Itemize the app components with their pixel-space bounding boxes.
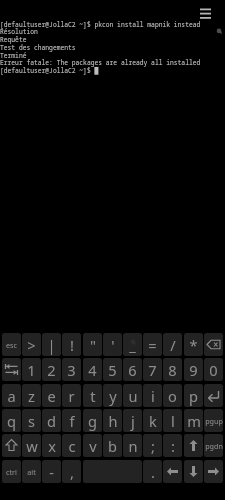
button[interactable]: ' — [103, 333, 122, 356]
staticText: * — [189, 335, 198, 355]
staticText: pgdn — [205, 441, 223, 451]
button[interactable]: | — [42, 333, 61, 356]
staticText: h — [108, 411, 118, 431]
staticText: ' — [111, 335, 115, 355]
button[interactable]: v — [83, 434, 102, 457]
button[interactable]: pgdn — [204, 434, 223, 457]
button[interactable]: 3 — [62, 358, 81, 381]
button[interactable]: > — [22, 333, 41, 356]
staticText: w — [26, 436, 38, 456]
staticText: | — [47, 335, 56, 355]
button[interactable]: u — [123, 384, 142, 407]
button[interactable]: ; — [143, 434, 162, 457]
button[interactable]: r — [62, 384, 81, 407]
button[interactable]: y — [103, 384, 122, 407]
button[interactable]: Up — [184, 434, 203, 457]
button[interactable]: j — [123, 409, 142, 432]
button[interactable]: q — [2, 409, 21, 432]
staticText: i — [151, 386, 155, 406]
button[interactable]: c — [62, 434, 81, 457]
button[interactable]: s — [22, 409, 41, 432]
button[interactable]: 5 — [103, 358, 122, 381]
staticText: s — [28, 411, 35, 431]
staticText: o — [168, 386, 177, 406]
button[interactable]: : — [163, 434, 182, 457]
button[interactable]: w — [22, 434, 41, 457]
button[interactable]: x — [42, 434, 61, 457]
button[interactable]: Right — [204, 460, 223, 483]
button[interactable]: 6 — [123, 358, 142, 381]
staticText: , — [70, 462, 74, 482]
button[interactable]: Menu — [198, 4, 216, 22]
staticText: g — [88, 411, 97, 431]
button[interactable]: 9 — [184, 358, 203, 381]
staticText: 8 — [168, 360, 177, 380]
button[interactable]: n — [123, 434, 142, 457]
button[interactable]: Backspace — [204, 333, 223, 356]
button[interactable]: Left — [163, 460, 182, 483]
button[interactable]: , — [62, 460, 81, 483]
button[interactable]: _ — [123, 333, 142, 356]
button[interactable]: 4 — [83, 358, 102, 381]
staticText: / — [170, 335, 176, 355]
staticText: u — [128, 386, 138, 406]
button[interactable]: 1 — [22, 358, 41, 381]
staticText: ; — [151, 436, 155, 456]
button[interactable]: i — [143, 384, 162, 407]
button[interactable]: - — [42, 460, 61, 483]
staticText: 9 — [189, 360, 198, 380]
button[interactable]: b — [103, 434, 122, 457]
button[interactable]: . — [143, 460, 162, 483]
button[interactable]: 7 — [143, 358, 162, 381]
button[interactable]: / — [163, 333, 182, 356]
staticText: _ — [129, 335, 136, 355]
button[interactable]: g — [83, 409, 102, 432]
button[interactable]: z — [22, 384, 41, 407]
staticText: p — [189, 386, 198, 406]
button[interactable]: t — [83, 384, 102, 407]
staticText: [defaultuser@JollaC2 ~]$ pkcon install m… — [0, 20, 201, 29]
button[interactable]: m — [184, 409, 203, 432]
button[interactable]: 0 — [204, 358, 223, 381]
staticText: alt — [27, 467, 36, 477]
button[interactable]: esc — [2, 333, 21, 356]
staticText: 4 — [88, 360, 97, 380]
staticText: 3 — [67, 360, 76, 380]
staticText: 2 — [47, 360, 56, 380]
staticText: j — [131, 411, 135, 431]
button[interactable]: Tab — [2, 358, 21, 381]
button[interactable]: e — [42, 384, 61, 407]
staticText: d — [47, 411, 56, 431]
button[interactable]: p — [184, 384, 203, 407]
staticText: 7 — [148, 360, 157, 380]
staticText: ctrl — [6, 467, 17, 477]
button[interactable]: ! — [62, 333, 81, 356]
staticText: . — [151, 462, 155, 482]
button[interactable]: f — [62, 409, 81, 432]
button[interactable]: pgup — [204, 409, 223, 432]
staticText: r — [68, 386, 75, 406]
button[interactable]: l — [163, 409, 182, 432]
button[interactable]: 8 — [163, 358, 182, 381]
button[interactable]: = — [143, 333, 162, 356]
staticText: Test des changements — [0, 43, 76, 52]
staticText: v — [89, 436, 97, 456]
button[interactable]: Enter — [204, 384, 223, 407]
button[interactable]: Shift — [2, 434, 21, 457]
button[interactable]: Down — [184, 460, 203, 483]
staticText: Requête — [0, 35, 27, 44]
button[interactable]: alt — [22, 460, 41, 483]
button[interactable]: k — [143, 409, 162, 432]
button[interactable]: * — [184, 333, 203, 356]
button[interactable]: ctrl — [2, 460, 21, 483]
button[interactable]: a — [2, 384, 21, 407]
button[interactable]: " — [83, 333, 102, 356]
staticText: ! — [70, 335, 74, 355]
button[interactable]: d — [42, 409, 61, 432]
button[interactable]: o — [163, 384, 182, 407]
staticText: x — [48, 436, 56, 456]
button[interactable]: 2 — [42, 358, 61, 381]
staticText: e — [47, 386, 56, 406]
button[interactable]: h — [103, 409, 122, 432]
